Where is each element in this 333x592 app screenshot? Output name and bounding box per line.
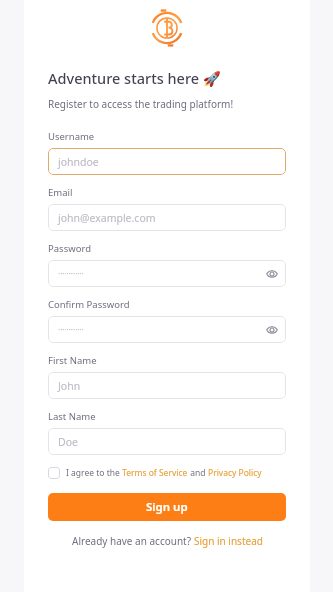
staticText: Doe <box>58 435 78 449</box>
button[interactable]: John <box>48 372 286 399</box>
staticText: John <box>58 379 81 393</box>
staticText: Already have an account? <box>72 534 194 548</box>
button[interactable]: ············ <box>48 260 286 287</box>
button[interactable]: Privacy Policy <box>208 467 262 479</box>
button[interactable]: johndoe <box>48 148 286 175</box>
staticText: john@example.com <box>58 211 156 225</box>
staticText: I agree to the <box>66 467 122 479</box>
staticText: Email <box>48 186 73 199</box>
button[interactable]: Terms of Service <box>122 467 188 479</box>
staticText: Confirm Password <box>48 298 130 311</box>
staticText: ············ <box>58 268 84 279</box>
button[interactable]: Toggle password visibility <box>262 320 282 340</box>
button[interactable]: Sign in instead <box>194 534 263 548</box>
staticText: ············ <box>58 324 84 335</box>
button[interactable]: Toggle password visibility <box>262 264 282 284</box>
button[interactable]: I agree to the <box>48 467 286 479</box>
staticText: johndoe <box>58 155 99 169</box>
staticText: First Name <box>48 354 97 367</box>
staticText: Password <box>48 242 91 255</box>
staticText: Username <box>48 130 95 143</box>
staticText: Last Name <box>48 410 96 423</box>
staticText: Sign up <box>146 499 188 515</box>
staticText: Register to access the trading platform! <box>48 97 234 111</box>
staticText: Adventure starts here 🚀 <box>48 68 221 88</box>
staticText: and <box>188 467 208 479</box>
button[interactable]: ············ <box>48 316 286 343</box>
button[interactable]: Doe <box>48 428 286 455</box>
button[interactable]: john@example.com <box>48 204 286 231</box>
button[interactable]: Sign up <box>48 493 286 521</box>
